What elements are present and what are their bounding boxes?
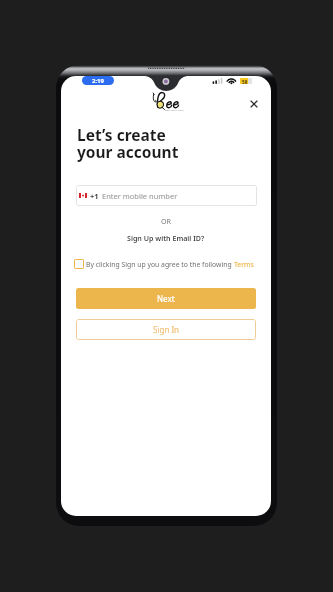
button[interactable]: Next bbox=[76, 288, 256, 309]
staticText: OR bbox=[161, 216, 172, 226]
button[interactable]: Sign Up with Email ID? bbox=[121, 230, 211, 246]
button[interactable]: Close bbox=[243, 93, 264, 114]
staticText: 2:19 bbox=[92, 77, 104, 85]
staticText: Let’s create your account bbox=[77, 124, 179, 162]
staticText: Next bbox=[157, 293, 175, 304]
staticText: Terms bbox=[234, 260, 254, 269]
staticText: +1 bbox=[90, 191, 99, 201]
staticText: Sign Up with Email ID? bbox=[127, 233, 205, 243]
staticText: Sign In bbox=[153, 324, 180, 335]
staticText: Enter mobile number bbox=[102, 191, 178, 201]
button[interactable]: +1 bbox=[76, 185, 257, 206]
button[interactable]: Sign In bbox=[76, 319, 256, 340]
button[interactable]: By clicking Sign up you agree to the fol… bbox=[74, 259, 254, 269]
staticText: 58 bbox=[242, 79, 248, 84]
staticText: By clicking Sign up you agree to the fol… bbox=[86, 260, 234, 269]
staticText: BEE SOLUTION bbox=[165, 108, 184, 111]
